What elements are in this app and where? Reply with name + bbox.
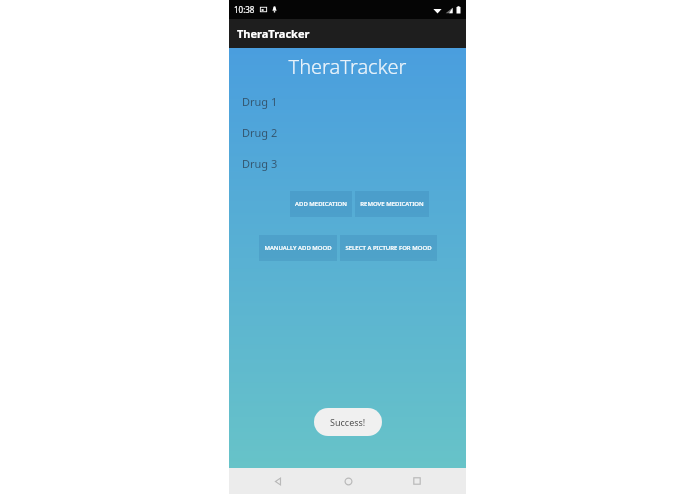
staticText: MANUALLY ADD MOOD [264, 244, 332, 252]
staticText: 10:38 [234, 4, 255, 15]
button[interactable]: REMOVE MEDICATION [355, 191, 429, 217]
button[interactable]: MANUALLY ADD MOOD [259, 235, 337, 261]
staticText: Drug 3 [242, 156, 278, 171]
button[interactable]: SELECT A PICTURE FOR MOOD [340, 235, 437, 261]
staticText: TheraTracker [229, 53, 466, 80]
staticText: Drug 2 [242, 125, 278, 140]
button[interactable]: Drug 1 [229, 94, 466, 109]
button[interactable]: Home [328, 468, 368, 494]
button[interactable]: ADD MEDICATION [290, 191, 352, 217]
button[interactable]: Recent apps [397, 468, 437, 494]
staticText: ADD MEDICATION [295, 200, 347, 208]
button[interactable]: Back [258, 468, 298, 494]
staticText: Drug 1 [242, 94, 278, 109]
staticText: TheraTracker [237, 26, 310, 41]
button[interactable]: Drug 2 [229, 125, 466, 140]
staticText: SELECT A PICTURE FOR MOOD [345, 244, 432, 252]
button[interactable]: Success! [314, 408, 382, 436]
staticText: Success! [330, 416, 366, 428]
staticText: REMOVE MEDICATION [360, 200, 424, 208]
button[interactable]: Drug 3 [229, 156, 466, 171]
